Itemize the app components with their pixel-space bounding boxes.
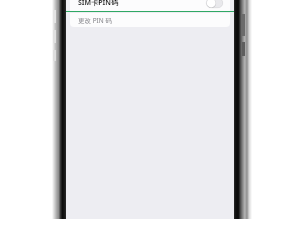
staticText: SIM卡PIN码 (78, 0, 118, 8)
button[interactable]: SIM 卡 PIN 码开关 (206, 0, 223, 8)
button[interactable]: SIM卡PIN码 (70, 0, 230, 11)
staticText: 更改 PIN 码 (78, 16, 112, 25)
button[interactable]: 更改 PIN 码 (70, 13, 230, 27)
